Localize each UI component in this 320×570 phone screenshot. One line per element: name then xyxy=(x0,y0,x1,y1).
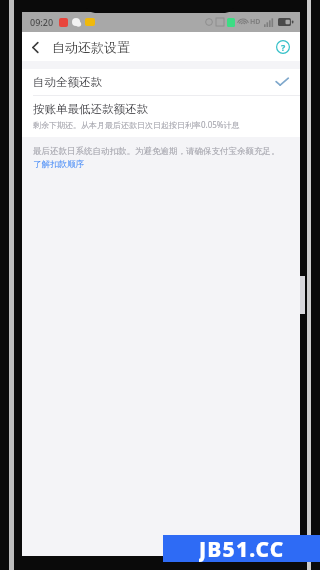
staticText: ? xyxy=(281,41,286,53)
button[interactable]: 最后还款日系统自动扣款。为避免逾期，请确保支付宝余额充足。了解扣款顺序 xyxy=(33,146,282,169)
staticText: JB51.CC xyxy=(199,535,285,562)
staticText: 自动全额还款 xyxy=(33,75,102,89)
button[interactable]: Back xyxy=(22,34,48,60)
staticText: 自动还款设置 xyxy=(52,39,130,55)
button[interactable]: 自动全额还款 xyxy=(22,69,300,95)
staticText: 09:20 xyxy=(30,16,54,28)
button[interactable]: Help xyxy=(272,36,294,58)
button[interactable]: 按账单最低还款额还款 xyxy=(22,96,300,137)
staticText: 按账单最低还款额还款 xyxy=(33,102,148,116)
staticText: 剩余下期还。从本月最后还款日次日起按日利率0.05%计息 xyxy=(33,119,240,130)
staticText: HD xyxy=(250,17,261,27)
